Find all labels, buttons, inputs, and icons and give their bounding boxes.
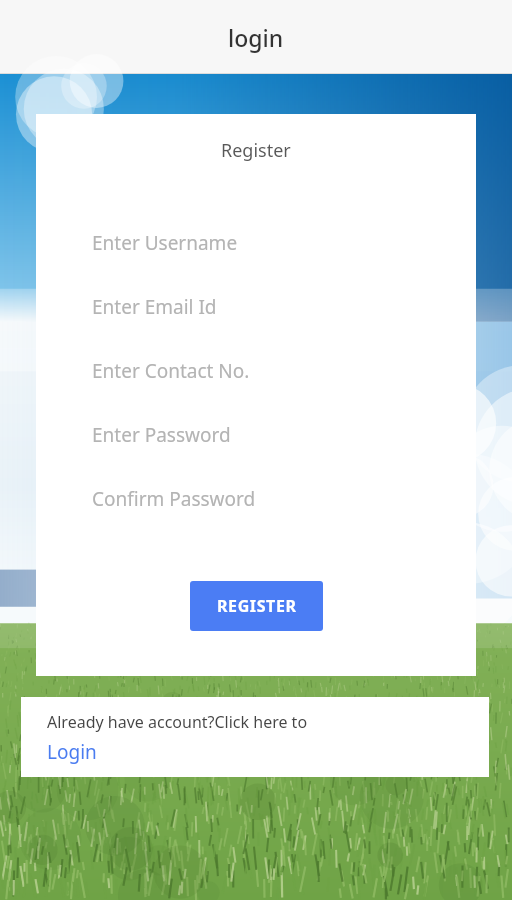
button[interactable]: Enter Password [36,403,476,467]
staticText: Login [47,739,97,765]
staticText: Confirm Password [92,486,256,512]
button[interactable]: Enter Contact No. [36,339,476,403]
staticText: Register [221,138,291,163]
staticText: REGISTER [217,595,297,617]
staticText: Enter Username [92,230,238,256]
button[interactable]: Confirm Password [36,467,476,531]
staticText: Already have account?Click here to [47,711,308,733]
button[interactable]: Enter Email Id [36,275,476,339]
button[interactable]: Already have account?Click here to [21,697,489,777]
staticText: Enter Contact No. [92,358,250,384]
button[interactable]: Enter Username [36,211,476,275]
staticText: login [228,22,284,53]
button[interactable]: REGISTER [190,581,323,631]
staticText: Enter Password [92,422,231,448]
staticText: Enter Email Id [92,294,217,320]
